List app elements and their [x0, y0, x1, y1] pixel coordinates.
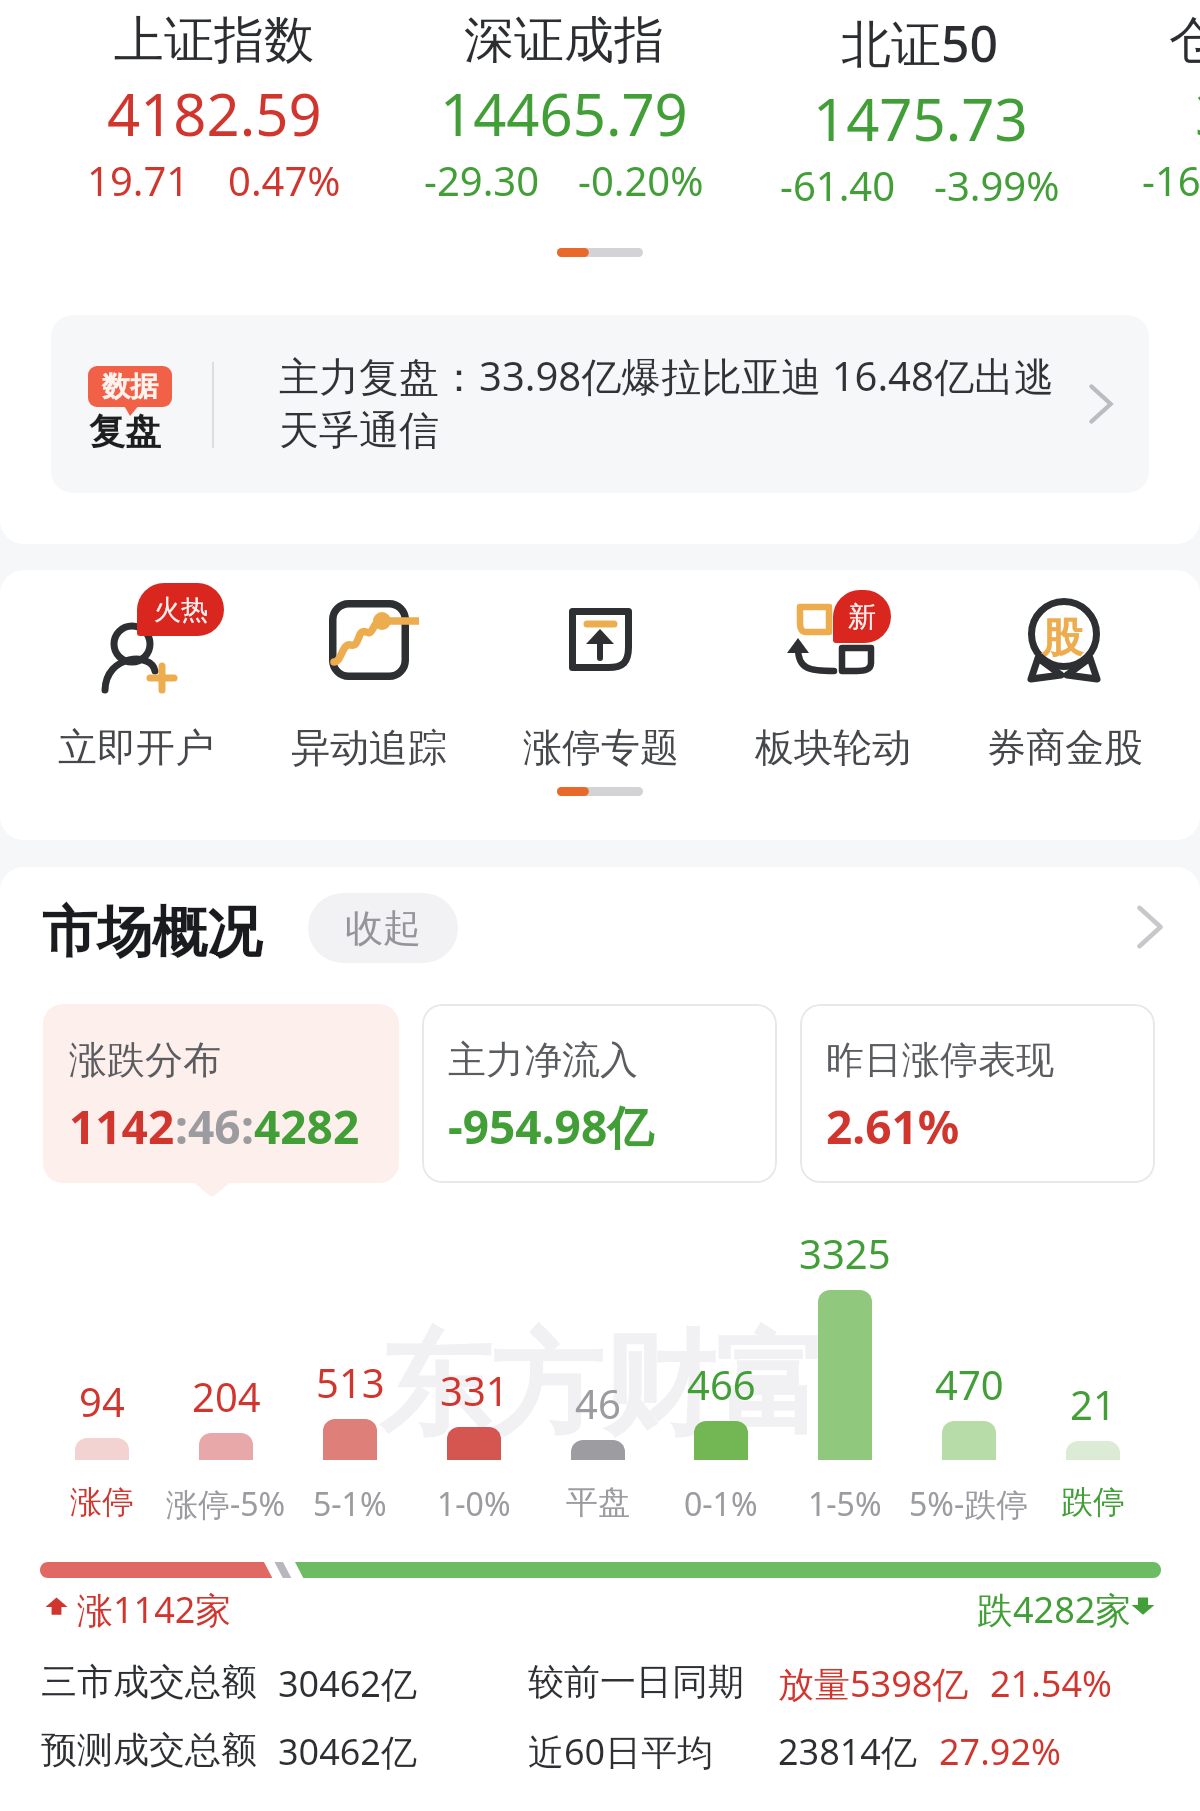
staticText: 0-1%	[684, 1482, 758, 1526]
other: 涨停专题	[501, 570, 701, 710]
staticText: 5%-跌停	[909, 1482, 1029, 1526]
staticText: 主力净流入	[448, 1036, 638, 1084]
button[interactable]: 仓位	[1019, 0, 1200, 207]
other: 立即开户	[36, 570, 236, 710]
staticText: 股	[1042, 613, 1083, 665]
staticText: 预测成交总额	[41, 1727, 257, 1772]
staticText: -61.40	[780, 158, 896, 212]
button[interactable]: 板块轮动	[717, 570, 949, 772]
staticText: 46	[188, 1095, 241, 1158]
staticText: 东方财富	[379, 1315, 827, 1456]
staticText: 收起	[345, 904, 421, 952]
staticText: 5-1%	[313, 1482, 387, 1526]
button[interactable]: 1-0%	[412, 1290, 536, 1520]
staticText: 1475.73	[813, 79, 1028, 158]
button[interactable]: 券商金股	[949, 570, 1181, 772]
staticText: 2.61%	[826, 1095, 960, 1158]
staticText: -954.98亿	[448, 1095, 654, 1158]
button[interactable]: 0-1%	[659, 1290, 783, 1520]
staticText: 市场概况	[42, 898, 262, 967]
button[interactable]: 功能分页指示器	[557, 787, 643, 796]
staticText: 跌4282家	[977, 1585, 1132, 1634]
button[interactable]: 数据	[51, 315, 1149, 493]
staticText: 3.	[1195, 74, 1200, 153]
staticText: 涨停-5%	[166, 1482, 286, 1526]
staticText: 27.92%	[939, 1727, 1061, 1776]
staticText: 数据	[102, 369, 158, 404]
staticText: 较前一日同期	[528, 1659, 744, 1704]
staticText: -16.78	[1142, 153, 1200, 207]
staticText: 主力复盘：33.98亿爆拉比亚迪 16.48亿出逃	[279, 348, 1054, 403]
staticText: 立即开户	[58, 723, 214, 772]
button[interactable]: 深证成指	[364, 0, 764, 207]
staticText: 昨日涨停表现	[826, 1036, 1054, 1084]
button[interactable]: 三市成交总额	[0, 1659, 1200, 1711]
staticText: 复盘	[89, 409, 161, 454]
staticText: -0.20%	[578, 153, 704, 207]
staticText: 14465.79	[440, 74, 688, 153]
button[interactable]: 预测成交总额	[0, 1727, 1200, 1779]
staticText: 火热	[154, 593, 208, 627]
staticText: 94	[79, 1374, 125, 1428]
button[interactable]: 收起	[308, 893, 458, 963]
staticText: 3325	[799, 1226, 891, 1280]
staticText: 涨跌分布	[69, 1036, 221, 1084]
staticText: 跌停	[1061, 1482, 1125, 1522]
staticText: 30462亿	[278, 1659, 417, 1708]
button[interactable]: 涨停-5%	[164, 1290, 288, 1520]
button[interactable]: 跌停	[1031, 1290, 1155, 1520]
staticText: 513	[316, 1355, 385, 1409]
staticText: 放量5398亿	[778, 1659, 969, 1708]
staticText: -3.99%	[934, 158, 1060, 212]
button[interactable]: 涨停专题	[485, 570, 717, 772]
staticText: 近60日平均	[528, 1727, 714, 1776]
staticText: 天孚通信	[279, 405, 439, 455]
staticText: 异动追踪	[291, 723, 447, 772]
other: 券商金股	[965, 570, 1165, 710]
staticText: 1-5%	[808, 1482, 882, 1526]
staticText: 涨停专题	[523, 723, 679, 772]
staticText: 涨1142家	[77, 1585, 232, 1634]
button[interactable]: 涨跌分布	[43, 1004, 399, 1183]
staticText: 新	[848, 599, 876, 634]
staticText: 板块轮动	[755, 723, 911, 772]
button[interactable]: 查看数据复盘	[1065, 368, 1137, 440]
staticText: -29.30	[424, 153, 540, 207]
staticText: 上证指数	[114, 9, 314, 72]
other: 异动追踪	[269, 570, 469, 710]
button[interactable]: 上证指数	[14, 0, 414, 207]
button[interactable]: 主力净流入	[422, 1004, 777, 1183]
button[interactable]: 平盘	[536, 1290, 660, 1520]
staticText: 23814亿	[778, 1727, 917, 1776]
staticText: 204	[192, 1369, 261, 1423]
staticText: 1-0%	[437, 1482, 511, 1526]
staticText: 1142	[69, 1095, 175, 1158]
staticText: 19.71	[87, 153, 190, 207]
staticText: 券商金股	[987, 723, 1143, 772]
staticText: 21	[1070, 1377, 1116, 1431]
button[interactable]: 异动追踪	[252, 570, 485, 772]
staticText: 21.54%	[990, 1659, 1112, 1708]
staticText: 4182.59	[107, 74, 322, 153]
staticText: 深证成指	[464, 9, 664, 72]
staticText: 30462亿	[278, 1727, 417, 1776]
staticText: 470	[935, 1357, 1004, 1411]
button[interactable]: 涨停	[40, 1290, 164, 1520]
button[interactable]: 立即开户	[19, 570, 252, 772]
staticText: 331	[440, 1363, 509, 1417]
button[interactable]: 指数分页指示器	[557, 248, 643, 257]
button[interactable]: 5%-跌停	[907, 1290, 1031, 1520]
staticText: 466	[687, 1357, 756, 1411]
staticText: 46	[575, 1376, 621, 1430]
other: 板块轮动	[733, 570, 933, 710]
button[interactable]: 查看市场概况详情	[1110, 887, 1190, 967]
staticText: 涨停	[70, 1482, 134, 1522]
staticText: :	[241, 1095, 254, 1158]
staticText: :	[175, 1095, 188, 1158]
button[interactable]: 1-5%	[783, 1290, 907, 1520]
staticText: 仓位	[1169, 9, 1200, 72]
button[interactable]: 昨日涨停表现	[800, 1004, 1155, 1183]
staticText: 三市成交总额	[41, 1659, 257, 1704]
button[interactable]: 北证50	[720, 0, 1120, 212]
button[interactable]: 5-1%	[288, 1290, 412, 1520]
